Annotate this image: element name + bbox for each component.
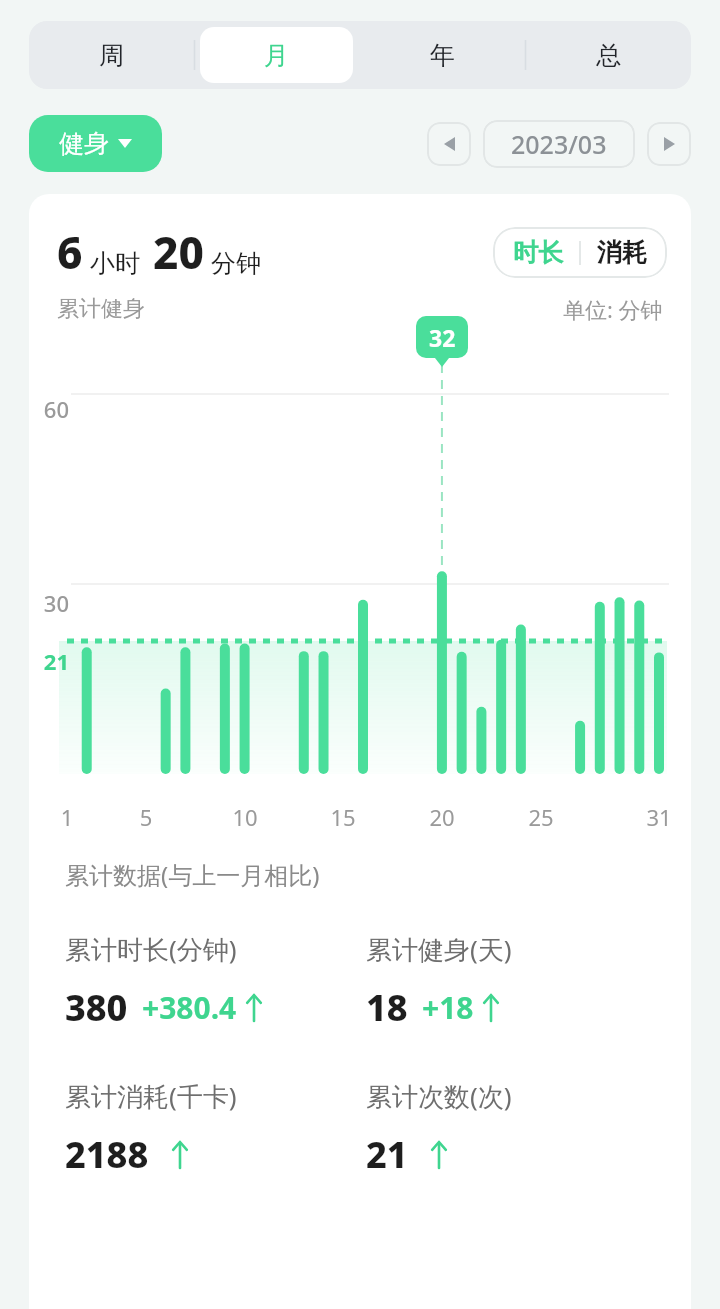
- staticText: 时长: [513, 237, 563, 268]
- button[interactable]: 2023/03: [483, 120, 635, 168]
- staticText: 累计次数(次): [366, 1078, 512, 1114]
- staticText: 2188: [65, 1130, 149, 1179]
- staticText: 21: [366, 1130, 408, 1179]
- staticText: 年: [430, 40, 455, 71]
- button[interactable]: Next month: [647, 122, 691, 166]
- staticText: 6: [57, 222, 83, 282]
- button[interactable]: 年: [365, 27, 519, 83]
- staticText: 累计健身(天): [366, 931, 512, 967]
- staticText: 累计时长(分钟): [65, 931, 237, 967]
- staticText: 5: [126, 802, 166, 832]
- staticText: 周: [99, 40, 124, 71]
- staticText: +380.4: [142, 987, 237, 1028]
- staticText: 60: [29, 394, 69, 424]
- staticText: +18: [422, 987, 474, 1028]
- button[interactable]: 时长: [493, 227, 579, 278]
- staticText: 10: [225, 802, 265, 832]
- staticText: 分钟: [211, 248, 261, 279]
- staticText: 累计数据(与上一月相比): [65, 858, 320, 891]
- staticText: 20: [422, 802, 462, 832]
- staticText: 1: [47, 802, 87, 832]
- staticText: 健身: [59, 128, 109, 159]
- staticText: 32: [429, 322, 456, 353]
- button[interactable]: 消耗: [581, 227, 667, 278]
- staticText: 15: [323, 802, 363, 832]
- staticText: 小时: [90, 248, 140, 279]
- staticText: 21: [29, 646, 69, 676]
- button[interactable]: 周: [35, 27, 188, 83]
- staticText: 25: [521, 802, 561, 832]
- staticText: 380: [65, 983, 128, 1032]
- staticText: 月: [264, 40, 289, 71]
- button[interactable]: Previous month: [427, 122, 471, 166]
- staticText: 总: [596, 40, 621, 71]
- staticText: 20: [153, 222, 204, 282]
- staticText: 2023/03: [511, 127, 607, 161]
- staticText: 累计健身: [57, 295, 145, 323]
- staticText: 30: [29, 588, 69, 618]
- button[interactable]: 健身: [29, 115, 162, 172]
- staticText: 18: [366, 983, 408, 1032]
- staticText: 31: [639, 802, 679, 832]
- button[interactable]: 总: [531, 27, 685, 83]
- staticText: 消耗: [597, 237, 647, 268]
- staticText: 单位: 分钟: [563, 294, 663, 324]
- staticText: 累计消耗(千卡): [65, 1078, 237, 1114]
- button[interactable]: 月: [200, 27, 353, 83]
